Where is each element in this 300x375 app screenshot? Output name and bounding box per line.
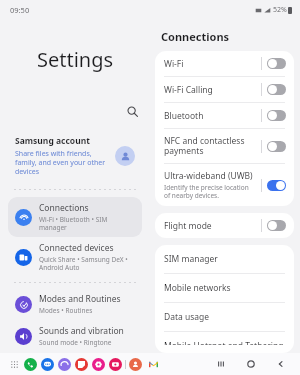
button[interactable]: Sounds and vibration [8,320,142,352]
button[interactable]: Bluetooth toggle [267,110,286,121]
staticText: Modes • Routines [39,306,93,315]
staticText: Share files with friends, family, and ev… [15,149,111,176]
staticText: Wi-Fi • Bluetooth • SIM manager [39,215,135,232]
button[interactable]: Search [122,101,142,121]
button[interactable] [58,358,71,371]
button[interactable] [75,358,88,371]
button[interactable]: Mobile Hotspot and Tethering [155,332,294,353]
staticText: Data usage [164,311,210,323]
button[interactable] [109,358,122,371]
button[interactable]: Mobile networks [155,274,294,302]
staticText: Flight mode [164,220,212,232]
staticText: Settings [8,46,142,73]
button[interactable]: Flight mode [155,213,294,238]
staticText: Connections [39,202,89,214]
button[interactable]: Connections [8,197,142,237]
button[interactable] [92,358,105,371]
button[interactable]: Home [244,357,258,371]
staticText: SIM manager [164,253,218,265]
button[interactable]: NFC and contactless payments [155,129,294,163]
staticText: Samsung account [15,135,90,147]
staticText: 09:50 [10,5,30,15]
button[interactable]: SIM manager [155,245,294,273]
button[interactable]: NFC and contactless payments toggle [267,141,286,152]
staticText: Sound mode • Ringtone [39,338,112,347]
staticText: Mobile networks [164,282,231,294]
button[interactable] [41,358,54,371]
button[interactable]: Wi-Fi [155,51,294,76]
button[interactable]: Gmail [147,358,159,370]
staticText: Sounds and vibration [39,325,124,337]
button[interactable]: Wi-Fi toggle [267,58,286,69]
staticText: Mobile Hotspot and Tethering [164,340,284,345]
staticText: Wi-Fi [164,58,184,70]
button[interactable]: Modes and Routines [8,288,142,320]
button[interactable]: Back [274,357,288,371]
button[interactable] [129,358,142,371]
button[interactable]: Bluetooth [155,103,294,128]
button[interactable] [24,358,37,371]
staticText: NFC and contactless payments [164,135,255,157]
button[interactable]: Recents [214,357,228,371]
button[interactable]: Apps [8,358,20,370]
button[interactable]: Ultra-wideband (UWB) [155,164,294,206]
button[interactable]: Samsung account [8,131,142,180]
staticText: Bluetooth [164,110,204,122]
button[interactable]: Wi-Fi Calling [155,77,294,102]
staticText: Connected devices [39,242,114,254]
staticText: 52% [273,5,287,15]
staticText: Identify the precise location of nearby … [164,183,255,200]
button[interactable]: Wi-Fi Calling toggle [267,84,286,95]
staticText: Ultra-wideband (UWB) [164,170,253,182]
staticText: Wi-Fi Calling [164,84,213,96]
staticText: Connections [161,29,230,44]
button[interactable]: Flight mode toggle [267,220,286,231]
button[interactable]: Data usage [155,303,294,331]
button[interactable]: Connected devices [8,237,142,277]
staticText: Modes and Routines [39,293,121,305]
button[interactable]: Ultra-wideband (UWB) toggle [267,180,286,191]
staticText: Quick Share • Samsung DeX • Android Auto [39,255,135,272]
